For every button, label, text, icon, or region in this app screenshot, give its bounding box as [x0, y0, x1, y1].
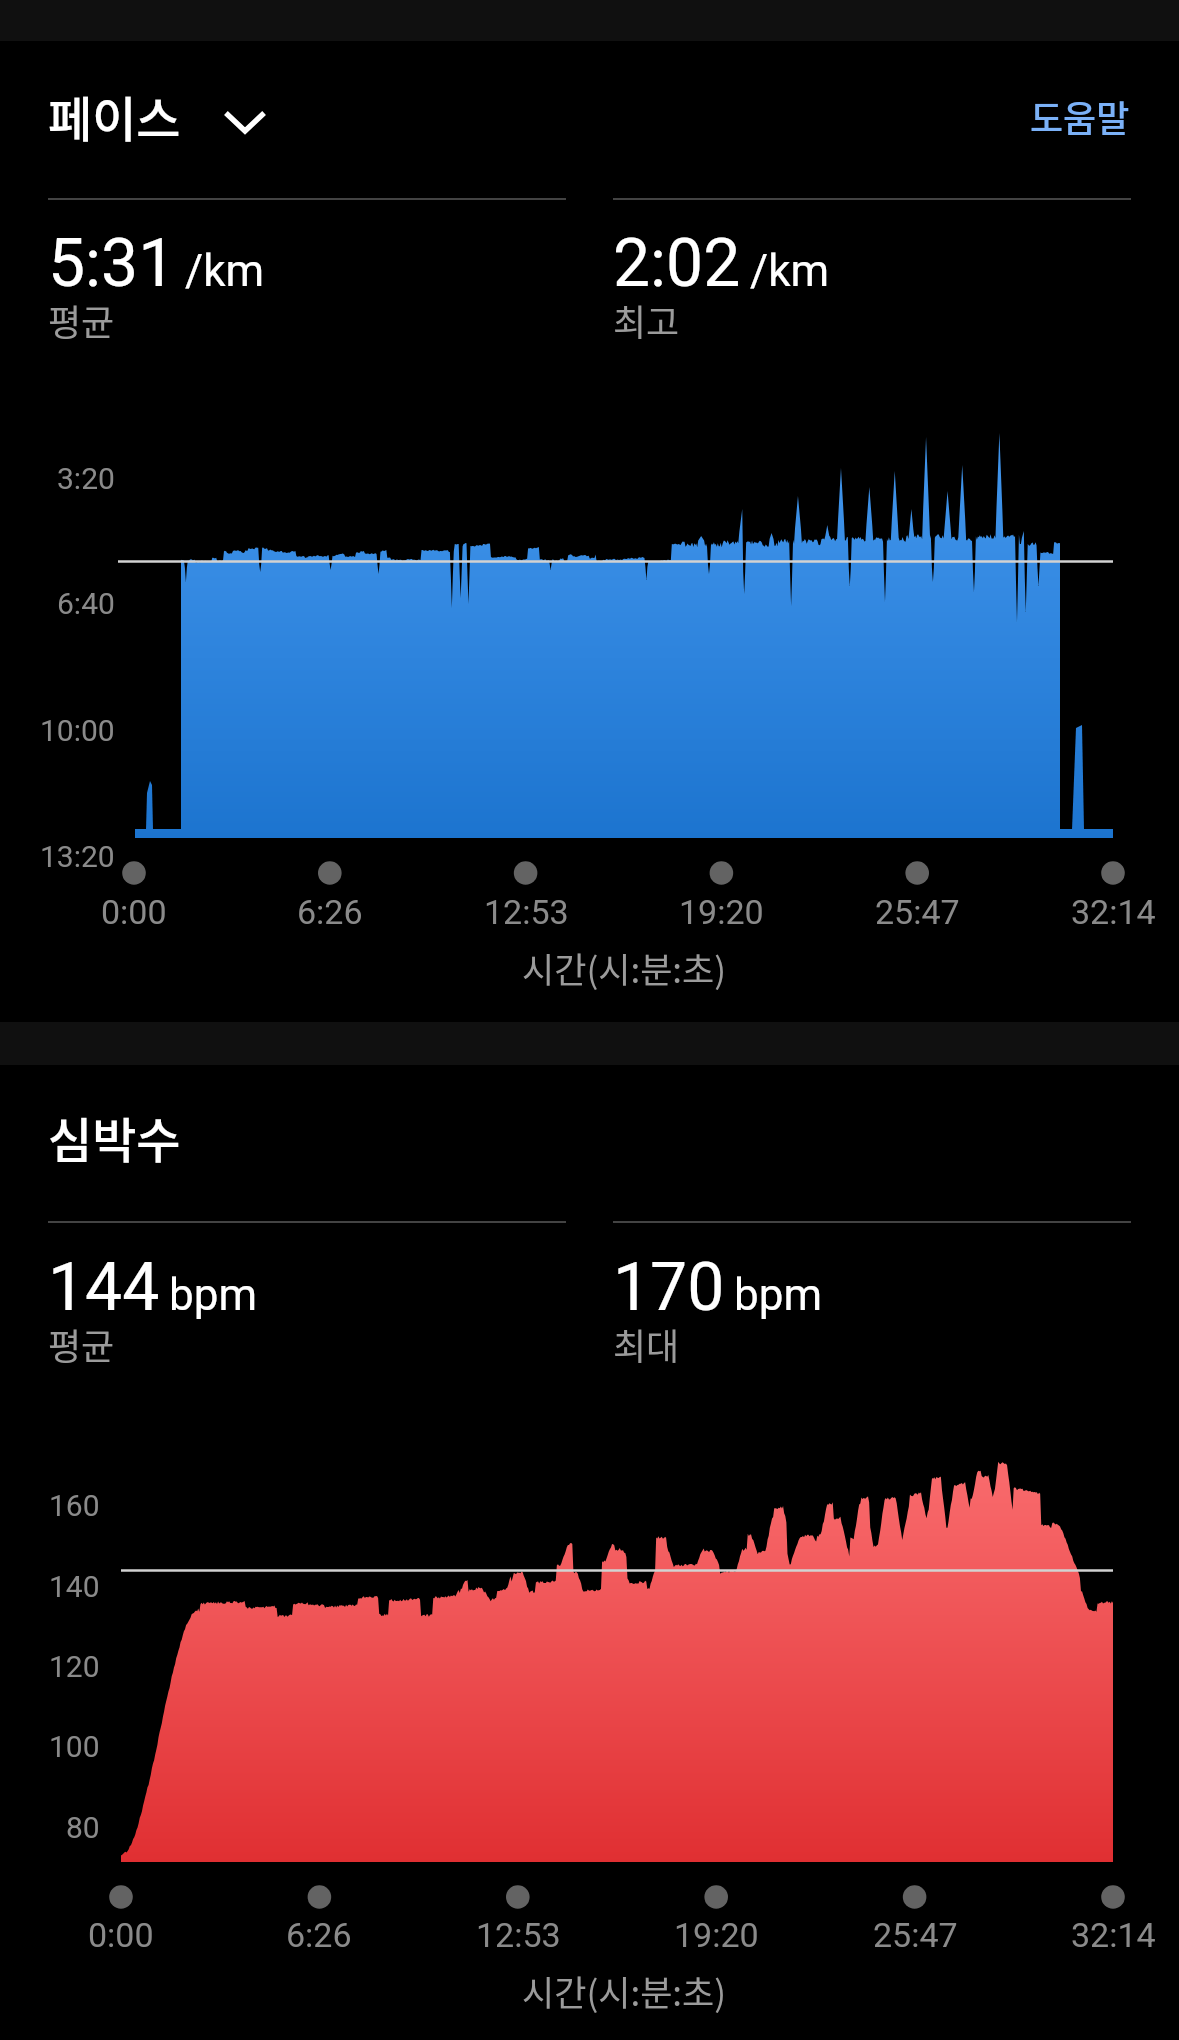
staticText: 10:00: [40, 713, 115, 748]
staticText: bpm: [734, 1269, 822, 1321]
other: Change metric: [222, 108, 268, 136]
staticText: 최고: [613, 294, 680, 346]
staticText: 시간(시:분:초): [522, 1965, 727, 2016]
staticText: 심박수: [48, 1102, 181, 1172]
staticText: 5:31: [48, 225, 176, 302]
staticText: 0:00: [88, 1915, 154, 1955]
staticText: 170: [613, 1249, 725, 1326]
staticText: 140: [49, 1569, 100, 1604]
staticText: 80: [66, 1810, 100, 1845]
staticText: 3:20: [57, 461, 115, 496]
staticText: 19:20: [674, 1915, 759, 1955]
staticText: 0:00: [101, 892, 167, 932]
staticText: 12:53: [476, 1915, 561, 1955]
staticText: 2:02: [613, 225, 741, 302]
button[interactable]: 페이스: [48, 81, 268, 151]
staticText: 평균: [48, 1318, 115, 1370]
staticText: 6:40: [57, 586, 115, 621]
staticText: 6:26: [297, 892, 363, 932]
staticText: bpm: [169, 1269, 257, 1321]
button[interactable]: 도움말: [1030, 90, 1130, 142]
staticText: 19:20: [679, 892, 764, 932]
staticText: 페이스: [48, 81, 181, 151]
staticText: /km: [185, 245, 265, 297]
staticText: 12:53: [484, 892, 569, 932]
staticText: 25:47: [875, 892, 960, 932]
staticText: 144: [48, 1249, 160, 1326]
staticText: 도움말: [1030, 90, 1130, 142]
staticText: 시간(시:분:초): [522, 942, 727, 993]
staticText: 100: [49, 1729, 100, 1764]
staticText: 13:20: [40, 839, 115, 874]
staticText: 32:14: [1071, 1915, 1156, 1955]
staticText: 6:26: [286, 1915, 352, 1955]
staticText: 120: [49, 1649, 100, 1684]
staticText: 최대: [613, 1318, 680, 1370]
staticText: 32:14: [1071, 892, 1156, 932]
staticText: 160: [49, 1488, 100, 1523]
staticText: 평균: [48, 294, 115, 346]
staticText: 25:47: [873, 1915, 958, 1955]
staticText: /km: [750, 245, 830, 297]
